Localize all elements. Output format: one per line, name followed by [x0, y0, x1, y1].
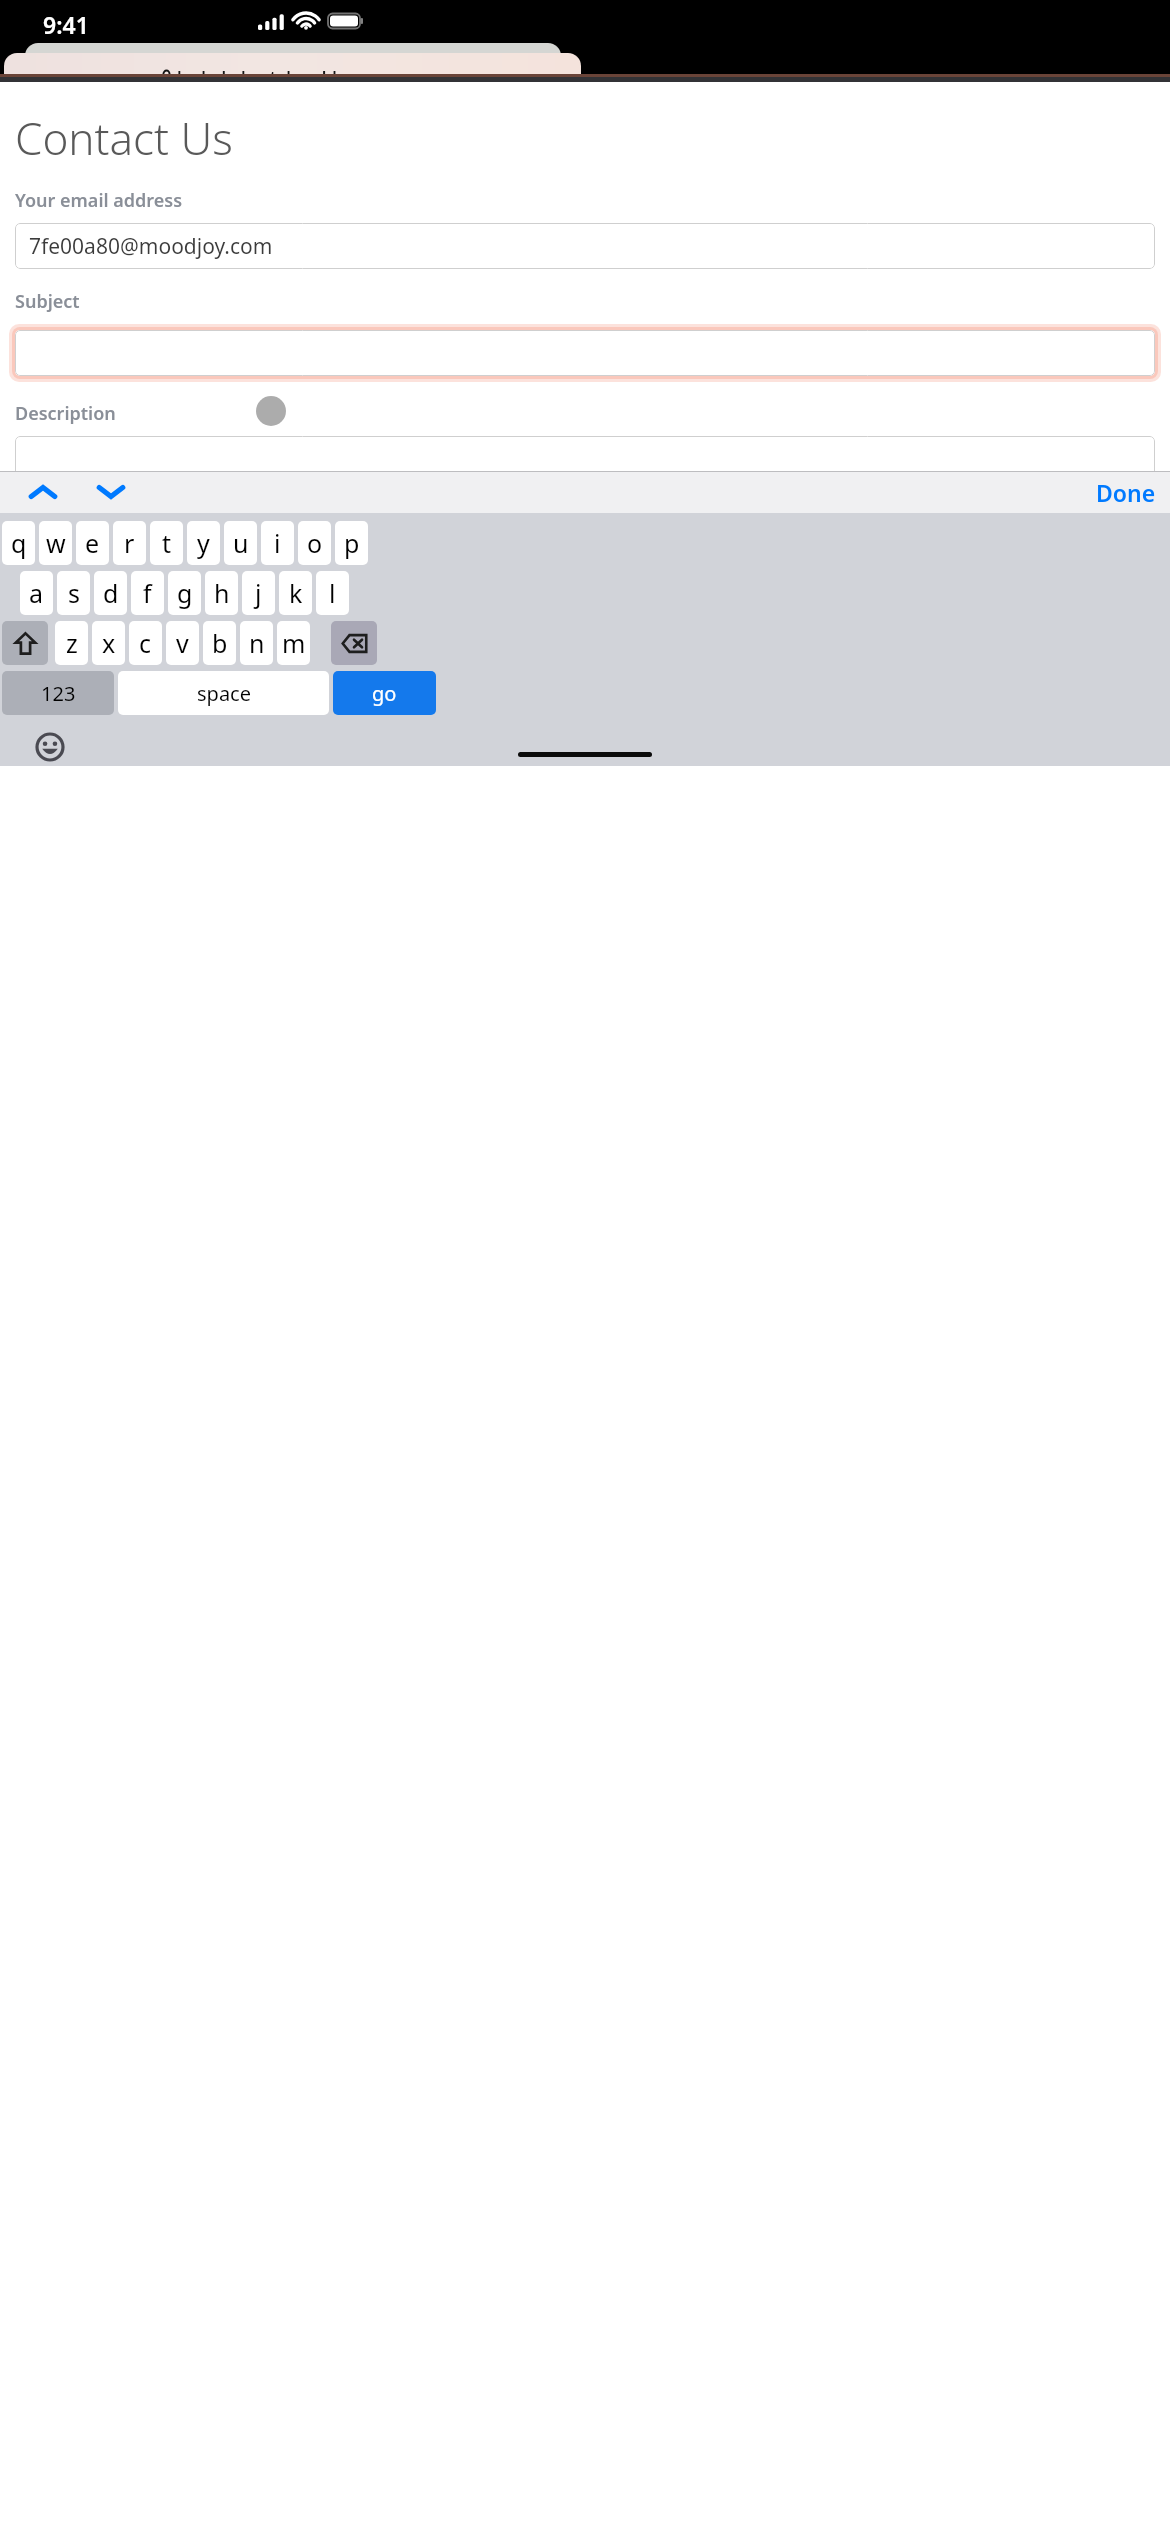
button[interactable] — [15, 436, 1155, 544]
staticText: j — [255, 576, 262, 610]
staticText: 7fe00a80@moodjoy.com — [29, 232, 273, 261]
button[interactable]: space — [118, 671, 329, 715]
button[interactable]: g — [168, 571, 201, 615]
button[interactable]: d — [94, 571, 127, 615]
staticText: l — [329, 576, 336, 610]
button[interactable]: Done — [1096, 477, 1156, 508]
staticText: g — [177, 576, 193, 610]
staticText: Please enter the details of your request… — [15, 555, 1041, 584]
staticText: z — [66, 626, 78, 660]
staticText: 123 — [41, 680, 76, 707]
staticText: h — [214, 576, 230, 610]
button[interactable]: go — [333, 671, 436, 715]
staticText: y — [197, 526, 210, 560]
button[interactable]: p — [335, 521, 368, 565]
button[interactable]: m — [277, 621, 310, 665]
staticText: s — [68, 576, 80, 610]
staticText: p — [344, 526, 360, 560]
button[interactable]: Previous field — [14, 471, 72, 513]
button[interactable]: Emoji keyboard — [28, 725, 72, 769]
button[interactable]: Backspace — [331, 621, 377, 665]
staticText: Done — [1096, 477, 1156, 508]
staticText: v — [176, 626, 189, 660]
button[interactable]: a — [20, 571, 53, 615]
button[interactable]: hwhelp.hostelworldgroup.com — [4, 53, 581, 91]
staticText: go — [372, 680, 397, 707]
staticText: n — [249, 626, 265, 660]
staticText: Your email address — [15, 188, 183, 213]
button[interactable]: n — [240, 621, 273, 665]
button[interactable]: z — [55, 621, 88, 665]
button[interactable]: b — [203, 621, 236, 665]
staticText: Description — [15, 401, 116, 426]
staticText: o — [307, 526, 323, 560]
staticText: k — [289, 576, 303, 610]
button[interactable]: o — [298, 521, 331, 565]
button[interactable]: c — [129, 621, 162, 665]
button[interactable]: e — [76, 521, 109, 565]
staticText: r — [124, 526, 135, 560]
button[interactable]: w — [39, 521, 72, 565]
button[interactable]: r — [113, 521, 146, 565]
button[interactable]: f — [131, 571, 164, 615]
staticText: i — [274, 526, 281, 560]
button[interactable]: k — [279, 571, 312, 615]
staticText: w — [46, 526, 66, 560]
button[interactable]: y — [187, 521, 220, 565]
button[interactable]: h — [205, 571, 238, 615]
button[interactable] — [15, 330, 1155, 376]
staticText: Contact Us — [15, 108, 233, 168]
staticText: t — [162, 526, 172, 560]
button[interactable]: 7fe00a80@moodjoy.com — [15, 223, 1155, 269]
button[interactable]: s — [57, 571, 90, 615]
staticText: u — [233, 526, 249, 560]
button[interactable]: l — [316, 571, 349, 615]
staticText: m — [282, 626, 306, 660]
staticText: Subject — [15, 289, 80, 314]
button[interactable]: j — [242, 571, 275, 615]
staticText: q — [11, 526, 27, 560]
staticText: a — [29, 576, 44, 610]
staticText: b — [212, 626, 228, 660]
button[interactable]: q — [2, 521, 35, 565]
staticText: c — [139, 626, 152, 660]
button[interactable]: t — [150, 521, 183, 565]
button[interactable]: v — [166, 621, 199, 665]
staticText: space — [197, 680, 251, 707]
staticText: e — [85, 526, 100, 560]
button[interactable]: 123 — [2, 671, 114, 715]
button[interactable]: Shift — [2, 621, 48, 665]
staticText: f — [143, 576, 152, 610]
button[interactable]: Background tab — [25, 43, 561, 83]
button[interactable]: Next field — [82, 471, 140, 513]
staticText: hwhelp.hostelworldgroup.com — [177, 65, 424, 87]
button[interactable]: i — [261, 521, 294, 565]
button[interactable]: u — [224, 521, 257, 565]
staticText: d — [103, 576, 119, 610]
button[interactable]: x — [92, 621, 125, 665]
staticText: x — [102, 626, 116, 660]
staticText: 9:41 — [43, 9, 89, 40]
